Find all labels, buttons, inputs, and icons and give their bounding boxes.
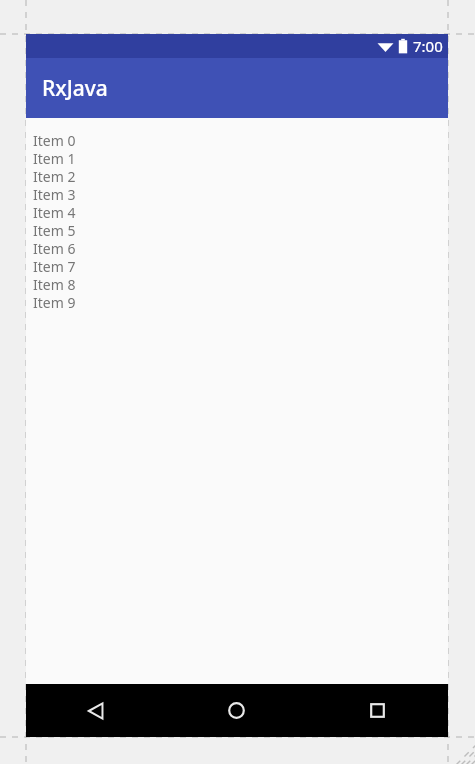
button[interactable]: Item 2 [33, 167, 448, 185]
button[interactable]: Item 1 [33, 149, 448, 167]
staticText: Item 7 [33, 257, 76, 275]
staticText: RxJava [42, 74, 108, 103]
button[interactable]: Item 9 [33, 293, 448, 311]
staticText: Item 4 [33, 203, 76, 221]
staticText: Item 1 [33, 149, 76, 167]
staticText: 7:00 [413, 36, 443, 56]
staticText: Item 0 [33, 131, 76, 149]
staticText: Item 8 [33, 275, 76, 293]
staticText: Item 3 [33, 185, 76, 203]
button[interactable]: Back [26, 684, 166, 737]
button[interactable]: Recent apps [307, 684, 448, 737]
staticText: Item 9 [33, 293, 76, 311]
staticText: Item 6 [33, 239, 76, 257]
button[interactable]: Item 6 [33, 239, 448, 257]
button[interactable]: Item 8 [33, 275, 448, 293]
button[interactable]: Home [166, 684, 307, 737]
staticText: Item 5 [33, 221, 76, 239]
staticText: Item 2 [33, 167, 76, 185]
button[interactable]: Item 3 [33, 185, 448, 203]
button[interactable]: Item 5 [33, 221, 448, 239]
button[interactable]: Item 7 [33, 257, 448, 275]
button[interactable]: Item 4 [33, 203, 448, 221]
button[interactable]: RxJava [26, 58, 448, 118]
button[interactable]: Item 0 [33, 131, 448, 149]
